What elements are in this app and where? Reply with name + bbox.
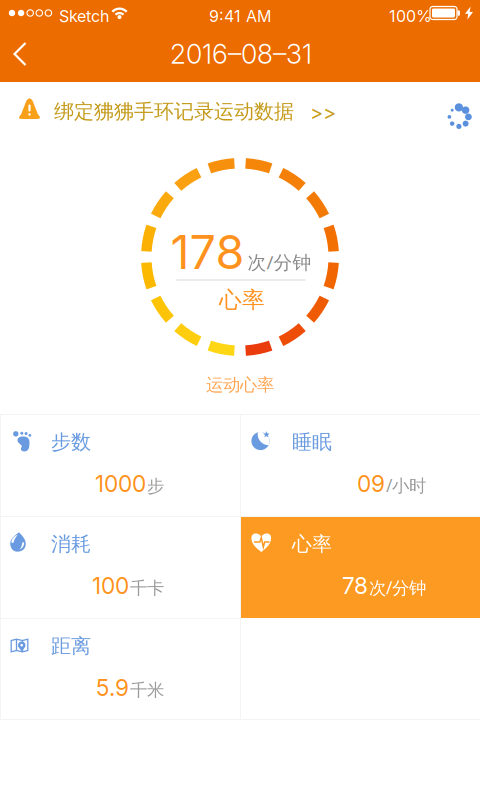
staticText: 09 [357, 470, 385, 497]
button[interactable]: 绑定狒狒手环记录运动数据 [0, 82, 480, 134]
staticText: 2016–08–31 [170, 38, 312, 70]
staticText: 5.9 [96, 674, 129, 701]
staticText: 千米 [130, 679, 164, 701]
button[interactable]: 睡眠 [241, 415, 480, 516]
staticText: 次/分钟 [247, 249, 311, 275]
staticText: 消耗 [51, 531, 91, 557]
button[interactable]: 距离 [0, 619, 240, 720]
staticText: 距离 [51, 633, 91, 659]
button[interactable]: 心率 [241, 517, 480, 618]
staticText: 运动心率 [206, 374, 274, 396]
staticText: 步数 [51, 429, 91, 455]
staticText: 绑定狒狒手环记录运动数据 [54, 99, 294, 124]
staticText: 100% [389, 6, 432, 26]
button[interactable]: 消耗 [0, 517, 240, 618]
button[interactable]: Back [0, 31, 43, 77]
staticText: 100 [92, 572, 129, 599]
staticText: 1000 [95, 470, 146, 497]
staticText: 9:41 AM [209, 6, 271, 26]
staticText: 178 [170, 224, 244, 280]
staticText: 78 [342, 572, 368, 599]
staticText: 睡眠 [292, 429, 332, 455]
staticText: Sketch [59, 6, 109, 26]
staticText: 心率 [219, 286, 265, 314]
button[interactable]: 步数 [0, 415, 240, 516]
staticText: 心率 [292, 531, 332, 557]
staticText: 步 [147, 475, 164, 497]
staticText: /小时 [386, 473, 426, 497]
staticText: >> [310, 100, 336, 124]
staticText: 次/分钟 [369, 576, 426, 599]
staticText: 千卡 [130, 577, 164, 599]
